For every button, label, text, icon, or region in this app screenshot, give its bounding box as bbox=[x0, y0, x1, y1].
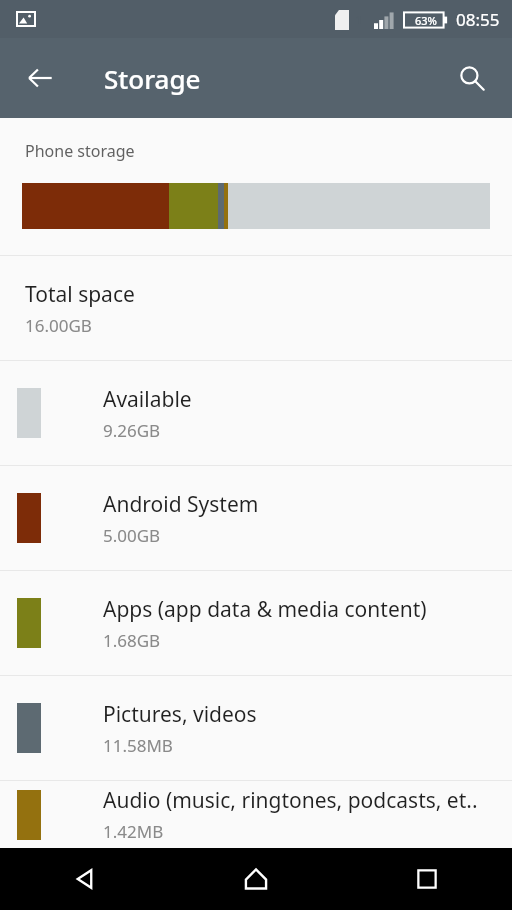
staticText: Storage bbox=[104, 61, 201, 96]
staticText: Apps (app data & media content) bbox=[103, 595, 427, 624]
staticText: Phone storage bbox=[25, 140, 135, 162]
staticText: 1.68GB bbox=[103, 629, 161, 652]
staticText: 16.00GB bbox=[25, 314, 92, 337]
button[interactable]: Total space bbox=[0, 256, 512, 360]
button[interactable]: Search bbox=[440, 46, 504, 110]
button[interactable]: Back bbox=[8, 46, 72, 110]
button[interactable]: Android System bbox=[0, 466, 512, 570]
staticText: Available bbox=[103, 385, 192, 414]
staticText: Total space bbox=[25, 280, 135, 309]
button[interactable]: Audio (music, ringtones, podcasts, et.. bbox=[0, 781, 512, 848]
staticText: 9.26GB bbox=[103, 419, 161, 442]
button[interactable]: Home bbox=[170, 848, 341, 910]
button[interactable]: Back bbox=[0, 848, 170, 910]
button[interactable]: Apps (app data & media content) bbox=[0, 571, 512, 675]
staticText: Android System bbox=[103, 490, 259, 519]
button[interactable]: Recent apps bbox=[341, 848, 512, 910]
staticText: 11.58MB bbox=[103, 734, 173, 757]
staticText: Audio (music, ringtones, podcasts, et.. bbox=[103, 786, 478, 815]
staticText: Pictures, videos bbox=[103, 700, 257, 729]
staticText: 1.42MB bbox=[103, 820, 164, 843]
staticText: 63% bbox=[415, 13, 437, 28]
button[interactable]: Pictures, videos bbox=[0, 676, 512, 780]
button[interactable]: Available bbox=[0, 361, 512, 465]
staticText: 08:55 bbox=[456, 8, 500, 31]
staticText: 5.00GB bbox=[103, 524, 161, 547]
